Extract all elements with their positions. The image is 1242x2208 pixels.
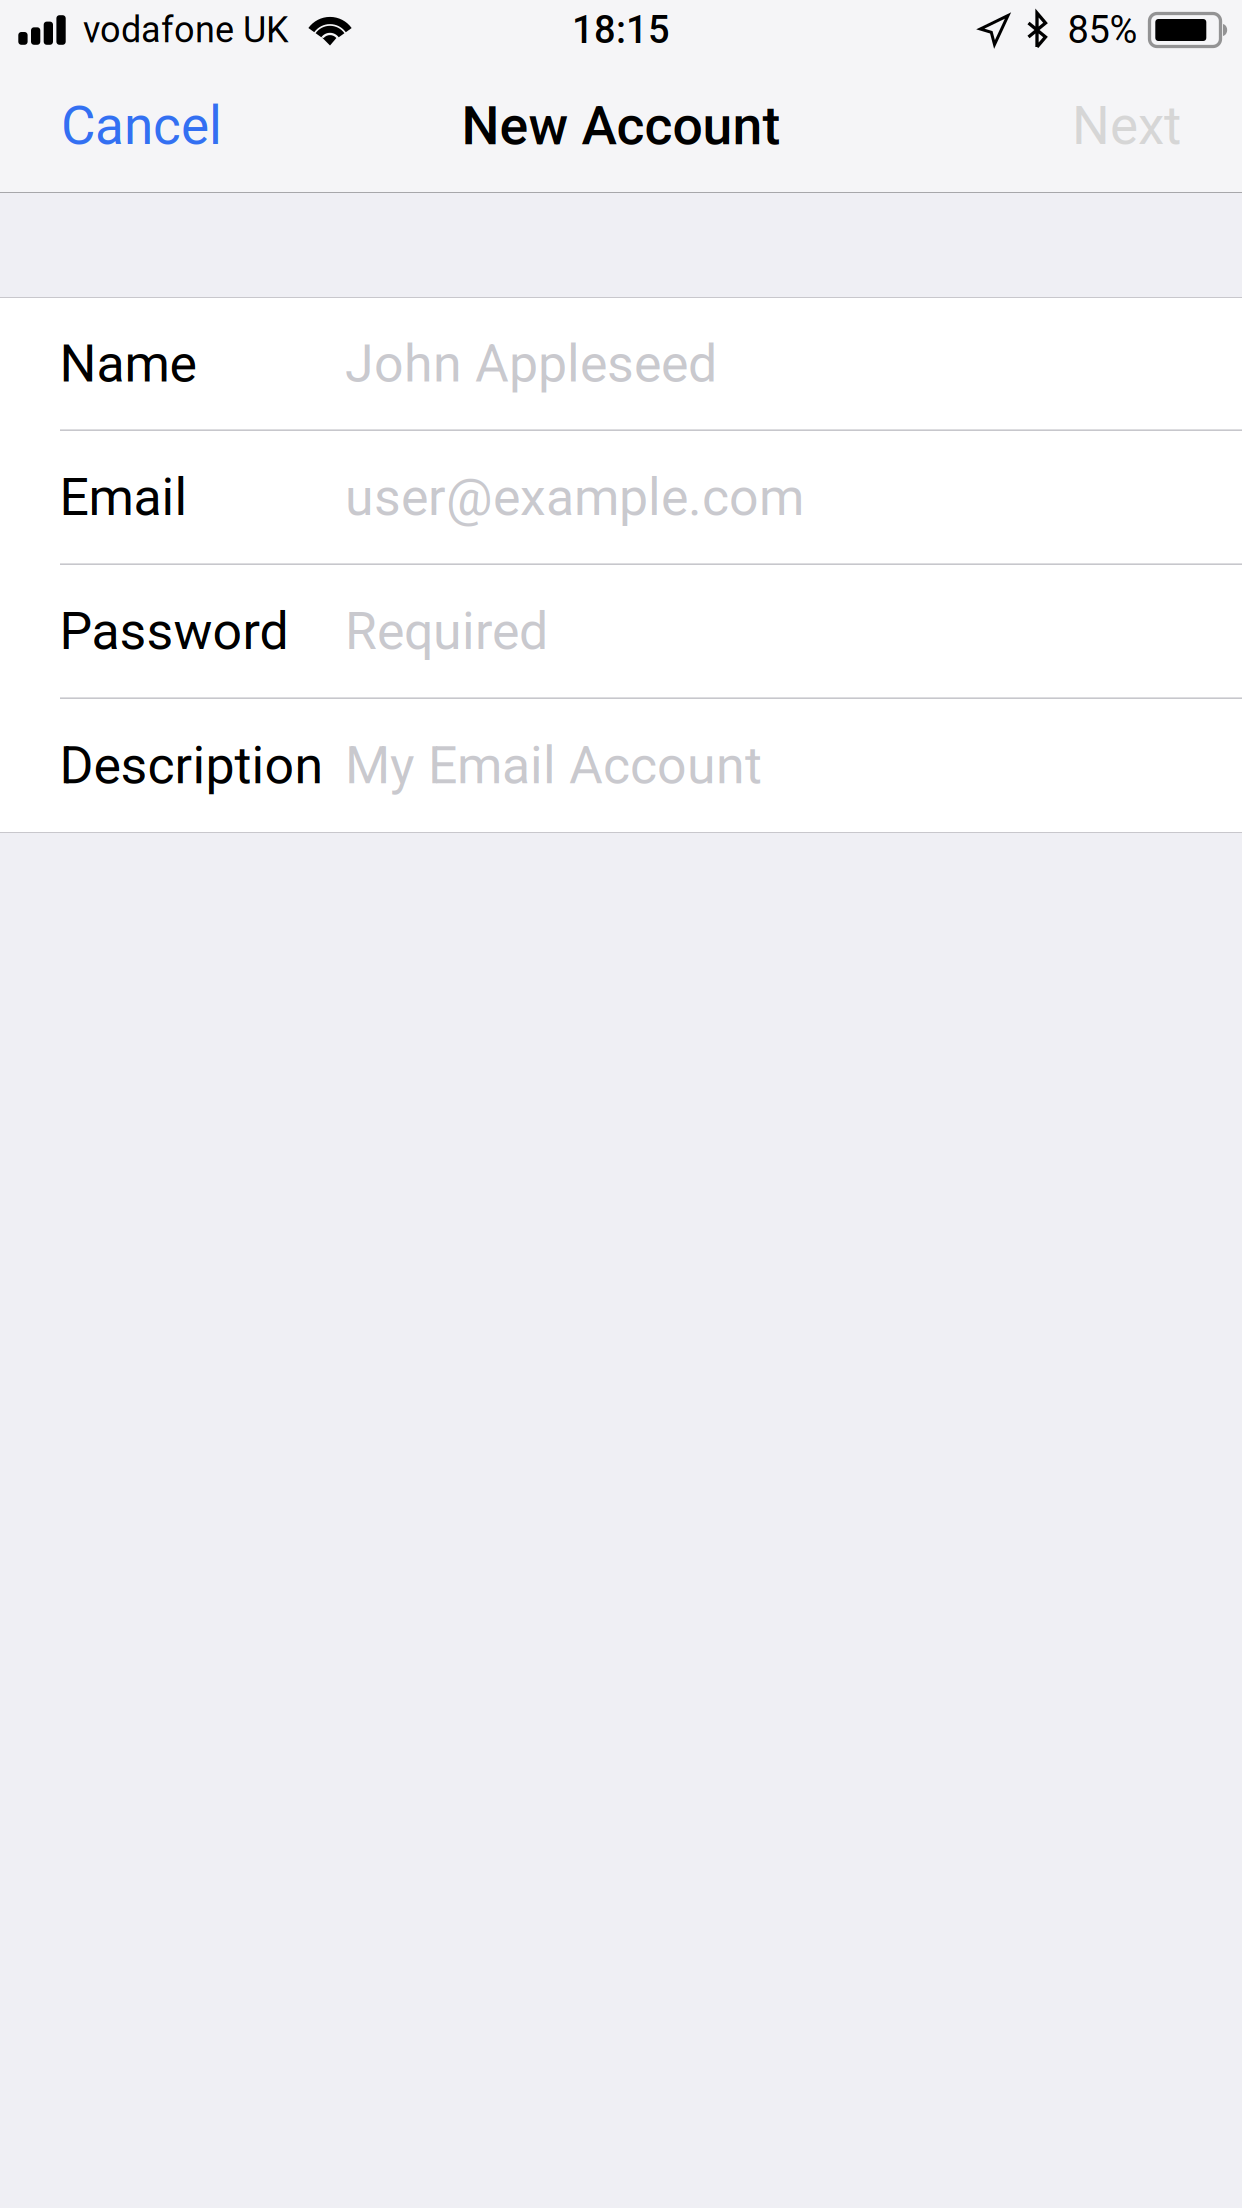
staticText: Next <box>1072 95 1181 157</box>
button[interactable]: Cancel <box>29 73 254 179</box>
staticText: John Appleseed <box>345 333 717 394</box>
button[interactable]: Email <box>0 431 1242 565</box>
staticText: vodafone UK <box>83 9 289 51</box>
staticText: Name <box>59 333 196 394</box>
staticText: 85% <box>1067 8 1137 52</box>
staticText: Cancel <box>61 95 222 157</box>
button[interactable]: Next <box>1040 73 1213 179</box>
staticText: Description <box>59 735 323 796</box>
button[interactable]: Password <box>0 565 1242 699</box>
staticText: 18:15 <box>572 8 670 52</box>
staticText: Email <box>59 467 187 527</box>
staticText: Password <box>59 601 288 661</box>
staticText: New Account <box>461 95 780 157</box>
staticText: My Email Account <box>345 735 762 796</box>
button[interactable]: Name <box>0 298 1242 431</box>
button[interactable]: Description <box>0 699 1242 832</box>
staticText: Required <box>345 601 548 661</box>
staticText: user@example.com <box>345 467 804 527</box>
